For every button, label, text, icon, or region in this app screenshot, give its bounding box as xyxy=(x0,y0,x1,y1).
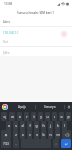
button[interactable]: k xyxy=(55,121,60,130)
staticText: f xyxy=(29,123,31,128)
button[interactable]: l xyxy=(62,121,67,130)
button[interactable]: Şifre xyxy=(0,49,72,56)
staticText: ?123 xyxy=(3,142,9,146)
button[interactable]: d xyxy=(20,121,25,130)
button[interactable]: Port xyxy=(0,38,72,45)
button[interactable]: x xyxy=(20,130,25,139)
staticText: g xyxy=(35,123,38,128)
staticText: r xyxy=(26,114,28,119)
button[interactable]: r xyxy=(24,112,29,121)
staticText: 13:58 xyxy=(4,2,13,6)
button[interactable]: q xyxy=(1,112,7,121)
staticText: c xyxy=(29,132,31,137)
staticText: b xyxy=(42,132,45,137)
button[interactable]: Senaryo xyxy=(36,102,64,112)
staticText: u xyxy=(46,114,49,119)
button[interactable]: Shift xyxy=(1,130,11,139)
button[interactable]: o xyxy=(59,112,64,121)
staticText: Aşağı xyxy=(18,105,26,109)
button[interactable]: Voice input xyxy=(65,102,72,112)
button[interactable]: Enter xyxy=(61,139,71,148)
button[interactable]: ?123 xyxy=(1,139,11,148)
button[interactable]: Aşağı xyxy=(8,102,35,112)
staticText: z xyxy=(15,132,17,137)
button[interactable]: p xyxy=(66,112,71,121)
button[interactable]: m xyxy=(55,130,60,139)
button[interactable]: Backspace xyxy=(62,130,71,139)
staticText: Port xyxy=(3,40,9,44)
staticText: a xyxy=(8,123,10,128)
button[interactable]: w xyxy=(9,112,15,121)
button[interactable]: ı xyxy=(52,112,57,121)
staticText: x xyxy=(22,132,24,137)
staticText: Şifre xyxy=(3,51,10,55)
staticText: w xyxy=(11,114,14,119)
staticText: o xyxy=(60,114,63,119)
staticText: h xyxy=(42,123,45,128)
button[interactable]: Adres xyxy=(0,18,72,25)
button[interactable]: Comma xyxy=(13,139,19,148)
button[interactable]: Period xyxy=(53,139,59,148)
button[interactable]: b xyxy=(41,130,46,139)
staticText: Sunucu hesabı: SIM kart 1 xyxy=(17,11,55,15)
button[interactable]: 192.168.1.1 xyxy=(0,29,72,36)
staticText: p xyxy=(67,114,70,119)
staticText: 192.168.1.1 xyxy=(3,31,19,35)
staticText: Adres xyxy=(3,20,10,24)
staticText: j xyxy=(50,123,51,128)
staticText: v xyxy=(36,132,38,137)
button[interactable]: e xyxy=(17,112,22,121)
staticText: y xyxy=(40,114,42,119)
staticText: ı xyxy=(54,114,55,119)
button[interactable]: j xyxy=(48,121,53,130)
button[interactable]: s xyxy=(13,121,18,130)
button[interactable]: f xyxy=(27,121,32,130)
button[interactable]: v xyxy=(34,130,39,139)
staticText: Senaryo xyxy=(44,105,56,109)
staticText: k xyxy=(57,123,59,128)
button[interactable]: y xyxy=(38,112,43,121)
staticText: l xyxy=(64,123,65,128)
button[interactable]: g xyxy=(34,121,39,130)
button[interactable]: h xyxy=(41,121,46,130)
button[interactable]: a xyxy=(6,121,11,130)
staticText: n xyxy=(49,132,52,137)
button[interactable]: Google search xyxy=(2,104,8,110)
button[interactable]: t xyxy=(31,112,36,121)
staticText: d xyxy=(21,123,24,128)
staticText: s xyxy=(15,123,17,128)
staticText: t xyxy=(33,114,35,119)
button[interactable]: z xyxy=(13,130,18,139)
staticText: q xyxy=(3,114,6,119)
button[interactable]: u xyxy=(45,112,50,121)
button[interactable]: n xyxy=(48,130,53,139)
staticText: m xyxy=(56,132,60,137)
button[interactable]: c xyxy=(27,130,32,139)
staticText: e xyxy=(19,114,21,119)
